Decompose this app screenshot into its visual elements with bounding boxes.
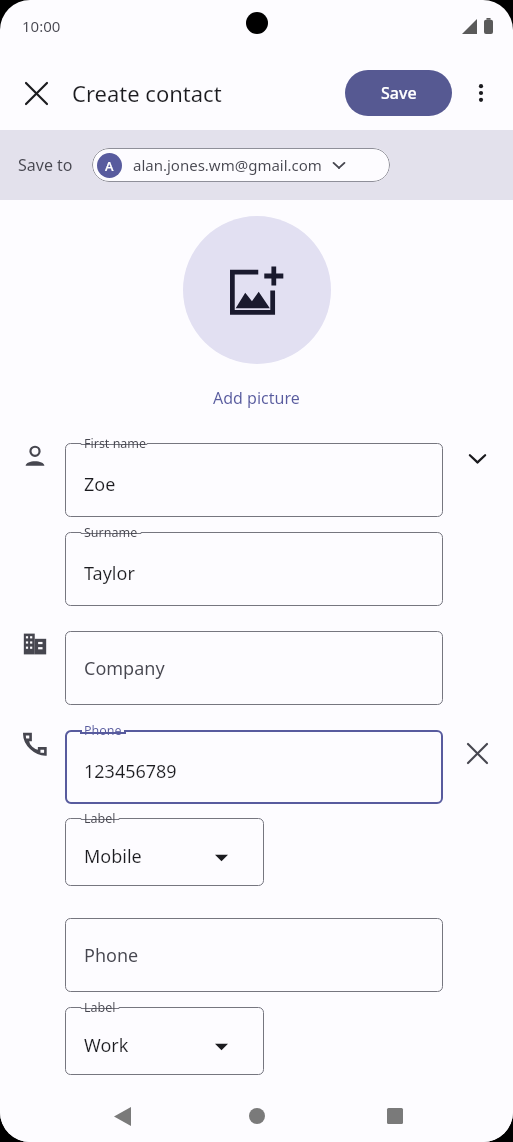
staticText: Mobile — [84, 844, 142, 869]
staticText: Taylor — [84, 561, 135, 586]
button[interactable]: A — [92, 148, 390, 182]
button[interactable]: Company — [65, 631, 443, 705]
staticText: Company — [84, 656, 165, 681]
button[interactable]: Back — [98, 1092, 146, 1140]
staticText: First name — [84, 435, 147, 452]
staticText: 123456789 — [84, 759, 177, 784]
staticText: 10:00 — [22, 16, 61, 36]
staticText: A — [105, 157, 114, 175]
button[interactable]: Expand name fields — [456, 437, 498, 479]
button[interactable]: Home — [233, 1092, 281, 1140]
button[interactable]: Label — [65, 1007, 264, 1075]
staticText: Save to — [18, 154, 73, 176]
button[interactable]: Label — [65, 818, 264, 886]
staticText: Work — [84, 1033, 129, 1058]
button[interactable]: Surname — [65, 532, 443, 606]
button[interactable]: First name — [65, 443, 443, 517]
button[interactable]: Recent apps — [371, 1092, 419, 1140]
staticText: Save — [381, 82, 417, 104]
staticText: Zoe — [84, 472, 116, 497]
button[interactable]: Close — [14, 71, 58, 115]
button[interactable]: Phone — [65, 918, 443, 992]
staticText: alan.jones.wm@gmail.com — [133, 155, 322, 175]
button[interactable]: Add picture — [183, 216, 331, 364]
button[interactable]: More options — [459, 71, 503, 115]
staticText: Create contact — [72, 78, 222, 108]
staticText: Surname — [84, 524, 138, 541]
button[interactable]: Save — [345, 70, 452, 116]
button[interactable]: Phone — [65, 730, 443, 804]
button[interactable]: Clear phone — [456, 732, 498, 774]
button[interactable]: Add picture — [213, 387, 300, 409]
staticText: Phone — [84, 943, 139, 968]
staticText: Label — [84, 999, 116, 1016]
staticText: Phone — [84, 722, 122, 739]
staticText: Label — [84, 810, 116, 827]
